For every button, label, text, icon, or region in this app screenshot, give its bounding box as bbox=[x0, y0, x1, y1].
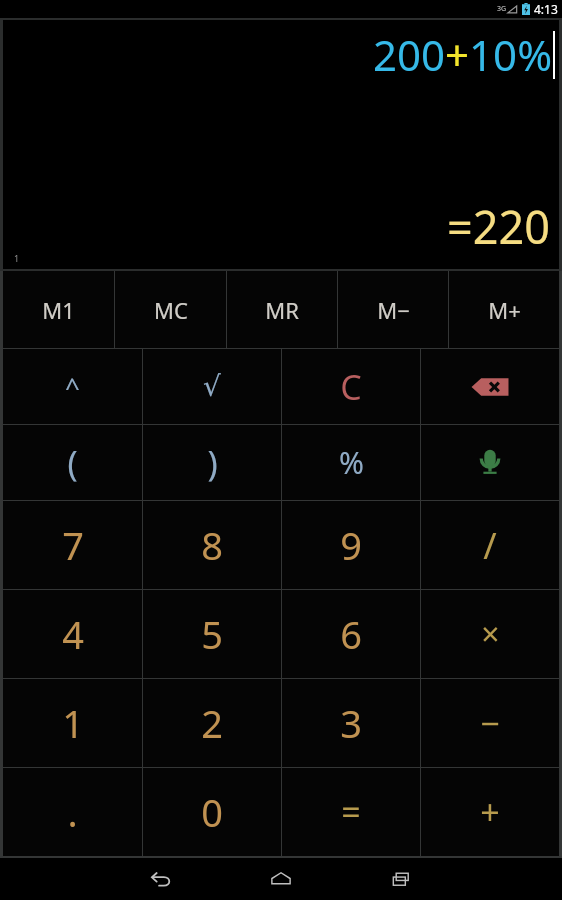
button[interactable]: M+ bbox=[449, 271, 559, 348]
button[interactable]: 4 bbox=[3, 590, 142, 678]
button[interactable]: MC bbox=[115, 271, 226, 348]
button[interactable]: × bbox=[421, 590, 559, 678]
button[interactable]: 6 bbox=[282, 590, 420, 678]
button[interactable]: ^ bbox=[3, 349, 142, 424]
button[interactable]: 2 bbox=[143, 679, 281, 767]
button[interactable]: 1 bbox=[3, 679, 142, 767]
button[interactable]: MR bbox=[227, 271, 337, 348]
staticText: 6 bbox=[340, 608, 362, 660]
staticText: M− bbox=[377, 295, 410, 325]
staticText: 2 bbox=[201, 697, 223, 749]
staticText: / bbox=[483, 521, 497, 570]
button[interactable]: Home bbox=[221, 858, 341, 900]
button[interactable]: M− bbox=[338, 271, 448, 348]
staticText: + bbox=[480, 789, 500, 835]
button[interactable]: 5 bbox=[143, 590, 281, 678]
button[interactable]: / bbox=[421, 501, 559, 589]
staticText: − bbox=[480, 700, 500, 746]
staticText: = bbox=[341, 789, 361, 835]
staticText: 4:13 bbox=[534, 1, 558, 17]
button[interactable]: ) bbox=[143, 425, 281, 500]
button[interactable]: Backspace bbox=[421, 349, 559, 424]
staticText: 3G bbox=[497, 4, 507, 14]
staticText: M1 bbox=[42, 295, 75, 325]
staticText: MC bbox=[154, 295, 188, 325]
button[interactable]: − bbox=[421, 679, 559, 767]
staticText: 1 bbox=[14, 252, 20, 264]
staticText: 8 bbox=[201, 519, 223, 571]
button[interactable]: 3 bbox=[282, 679, 420, 767]
button[interactable]: % bbox=[282, 425, 420, 500]
button[interactable]: 9 bbox=[282, 501, 420, 589]
staticText: =220 bbox=[447, 196, 550, 257]
staticText: 4 bbox=[62, 608, 84, 660]
button[interactable]: = bbox=[282, 768, 420, 856]
staticText: C bbox=[340, 364, 362, 410]
staticText: ( bbox=[67, 440, 78, 486]
staticText: 200+10% bbox=[373, 26, 553, 83]
button[interactable]: Back bbox=[101, 858, 221, 900]
staticText: % bbox=[339, 442, 364, 483]
button[interactable]: Voice input bbox=[421, 425, 559, 500]
button[interactable]: C bbox=[282, 349, 420, 424]
button[interactable]: M1 bbox=[3, 271, 114, 348]
staticText: 5 bbox=[201, 608, 223, 660]
button[interactable]: √ bbox=[143, 349, 281, 424]
staticText: ^ bbox=[65, 369, 80, 404]
staticText: × bbox=[481, 612, 500, 656]
staticText: MR bbox=[265, 295, 299, 325]
button[interactable]: 0 bbox=[143, 768, 281, 856]
staticText: 7 bbox=[62, 519, 84, 571]
button[interactable]: + bbox=[421, 768, 559, 856]
staticText: 0 bbox=[201, 786, 223, 838]
staticText: 3 bbox=[340, 697, 362, 749]
staticText: √ bbox=[203, 370, 221, 403]
staticText: 9 bbox=[340, 519, 362, 571]
staticText: ) bbox=[207, 440, 218, 486]
button[interactable]: Recent apps bbox=[341, 858, 461, 900]
staticText: M+ bbox=[488, 295, 521, 325]
button[interactable]: ( bbox=[3, 425, 142, 500]
button[interactable]: 8 bbox=[143, 501, 281, 589]
button[interactable]: 7 bbox=[3, 501, 142, 589]
button[interactable]: . bbox=[3, 768, 142, 856]
staticText: . bbox=[67, 786, 78, 838]
staticText: 1 bbox=[62, 697, 84, 749]
